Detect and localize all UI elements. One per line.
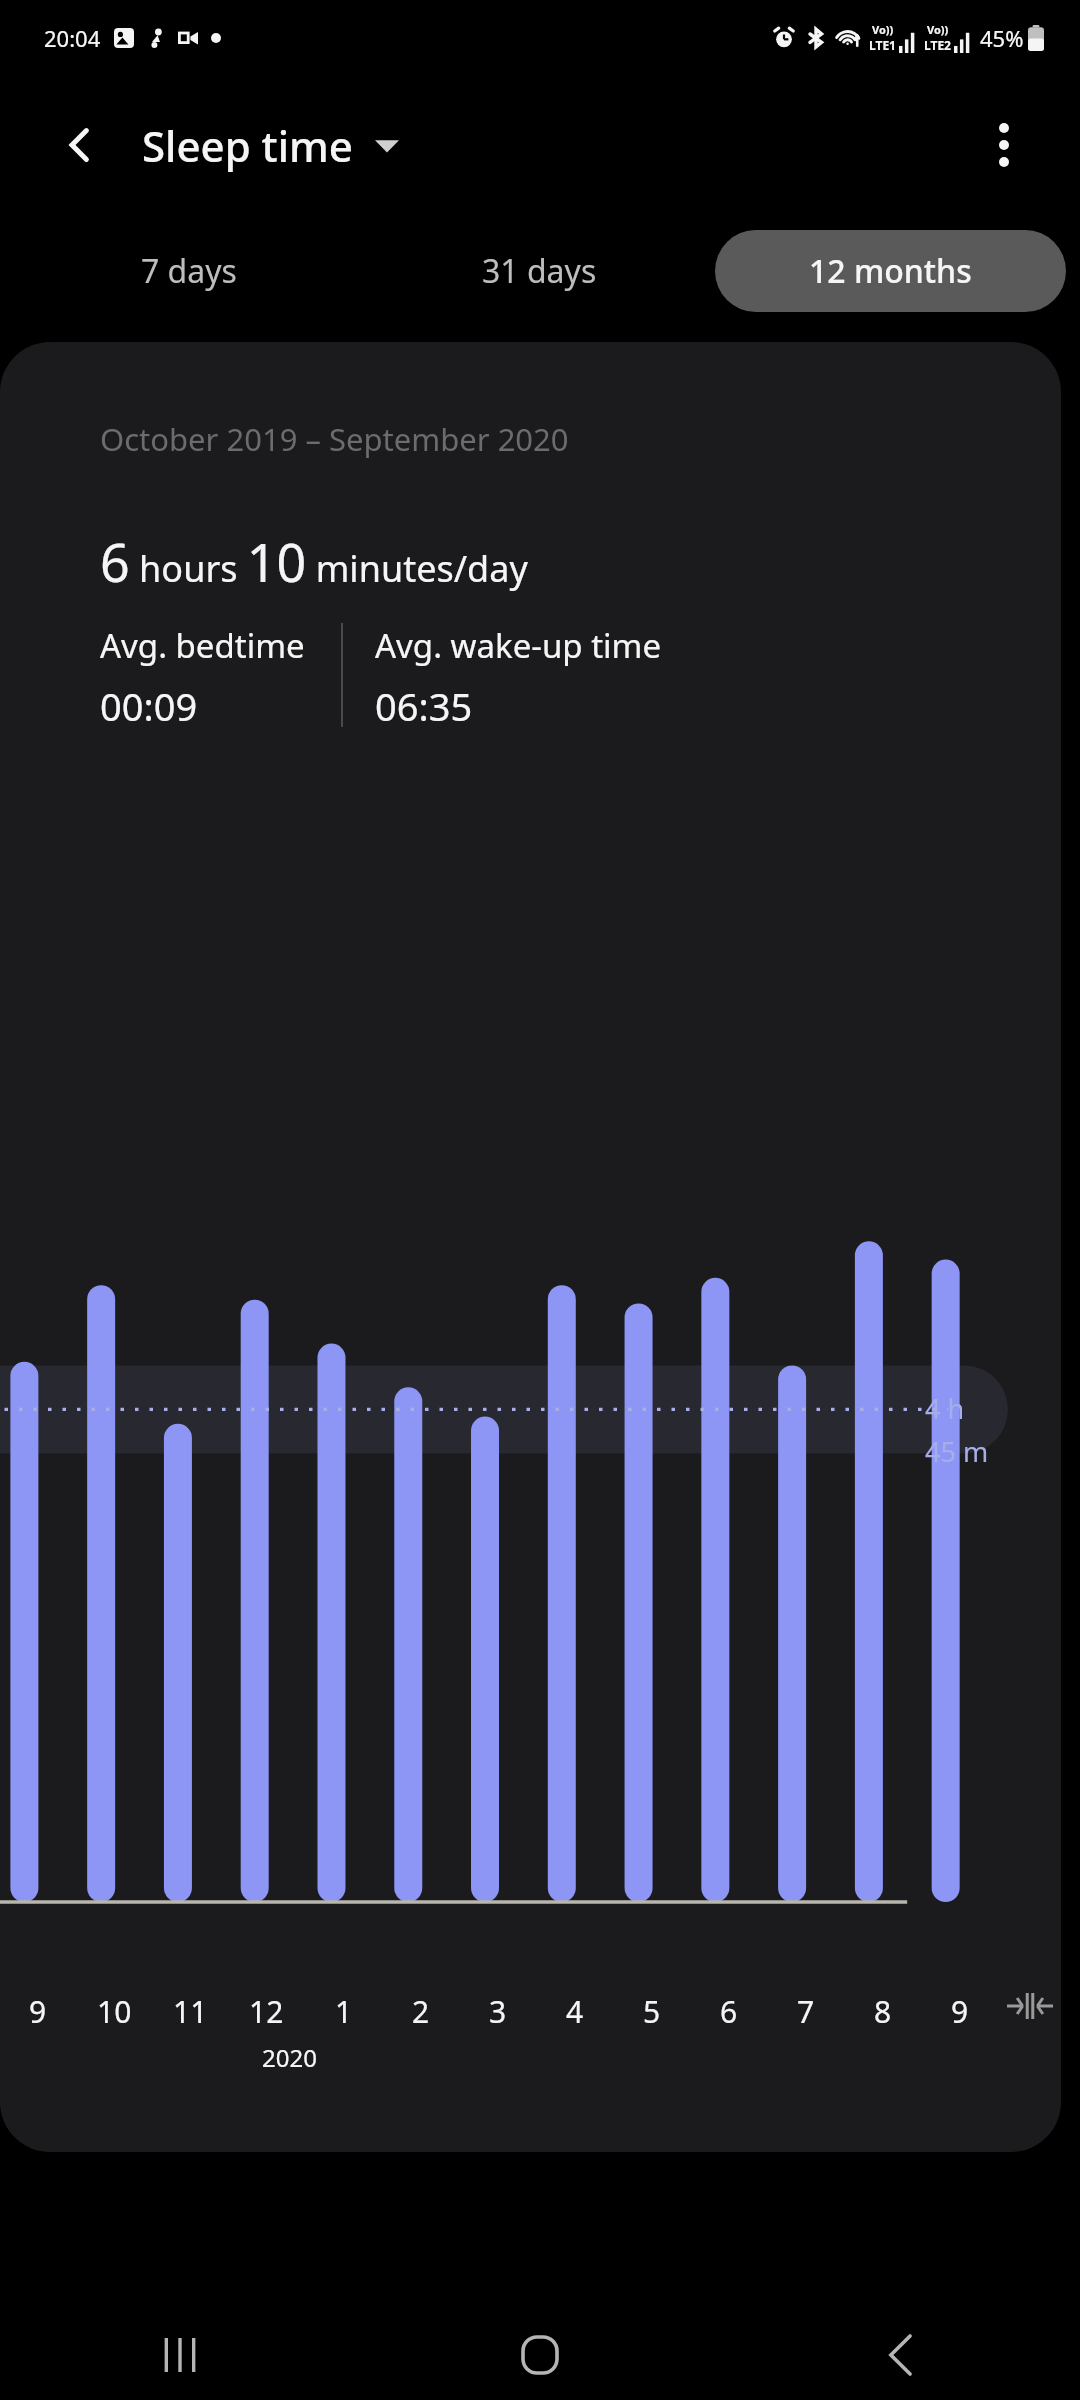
staticText: 9 <box>29 1991 47 2032</box>
button[interactable]: Home <box>360 2310 720 2400</box>
staticText: LTE2 <box>924 37 951 53</box>
button[interactable]: 31 days <box>364 230 715 312</box>
button[interactable]: Sleep time <box>142 117 399 174</box>
staticText: 1 <box>335 1991 353 2032</box>
staticText: Sleep time <box>142 117 353 174</box>
staticText: 10 <box>97 1991 132 2032</box>
staticText: 7 <box>797 1991 815 2032</box>
staticText: October 2019 – September 2020 <box>100 418 569 460</box>
staticText: 20:04 <box>44 23 101 53</box>
staticText: 9 <box>951 1991 969 2032</box>
staticText: 31 days <box>482 249 597 293</box>
staticText: 12 months <box>809 249 972 293</box>
staticText: 45 m <box>925 1433 989 1470</box>
staticText: 6 <box>720 1991 738 2032</box>
staticText: 4 <box>566 1991 584 2032</box>
staticText: 12 <box>249 1991 284 2032</box>
staticText: 2020 <box>262 2041 317 2074</box>
staticText: 4 h <box>925 1390 965 1427</box>
staticText: 11 <box>173 1991 208 2032</box>
staticText: Avg. wake-up time <box>375 623 662 668</box>
staticText: 06:35 <box>375 680 473 732</box>
button[interactable]: Back <box>48 113 112 177</box>
staticText: Vo)) <box>927 22 949 37</box>
staticText: 7 days <box>141 249 237 293</box>
staticText: 45% <box>980 23 1024 53</box>
button[interactable]: 7 days <box>14 230 364 312</box>
staticText: 2 <box>412 1991 430 2032</box>
staticText: Vo)) <box>872 22 894 37</box>
button[interactable]: Back <box>720 2310 1080 2400</box>
staticText: 5 <box>643 1991 661 2032</box>
staticText: 6 hours 10 minutes/day <box>100 526 528 597</box>
staticText: 00:09 <box>100 680 198 732</box>
staticText: Avg. bedtime <box>100 623 305 668</box>
button[interactable]: Recents <box>0 2310 360 2400</box>
staticText: 3 <box>489 1991 507 2032</box>
button[interactable]: More options <box>970 111 1038 179</box>
staticText: 8 <box>874 1991 892 2032</box>
staticText: LTE1 <box>869 37 896 53</box>
button[interactable]: 12 months <box>715 230 1066 312</box>
